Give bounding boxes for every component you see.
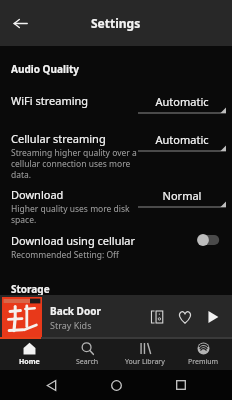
button[interactable]: Recent apps	[167, 371, 195, 399]
staticText: Storage	[11, 282, 50, 295]
button[interactable]: Automatic	[138, 94, 226, 114]
staticText: Home	[19, 357, 40, 367]
button[interactable]: Home	[102, 371, 130, 399]
button[interactable]: Normal	[138, 188, 226, 208]
staticText: Automatic	[138, 132, 226, 147]
button[interactable]: Connect to a device	[146, 306, 168, 328]
button[interactable]: Back	[37, 371, 65, 399]
staticText: Download	[11, 187, 64, 202]
button[interactable]: Back	[4, 7, 36, 39]
staticText: Normal	[138, 188, 226, 203]
staticText: Premium	[188, 357, 219, 367]
staticText: Cellular streaming	[11, 131, 106, 146]
staticText: Audio Quality	[11, 62, 79, 76]
staticText: Streaming higher quality over a cellular…	[11, 147, 141, 180]
button[interactable]: Your Library	[116, 339, 174, 370]
button[interactable]: Automatic	[138, 132, 226, 152]
button[interactable]: Download using cellular toggle	[194, 232, 224, 248]
staticText: Download using cellular	[11, 233, 136, 248]
staticText: Search	[76, 357, 99, 367]
button[interactable]: Download	[0, 184, 232, 226]
button[interactable]: Back Door	[0, 295, 232, 339]
button[interactable]: WiFi streaming	[0, 90, 232, 124]
staticText: Your Library	[125, 357, 165, 367]
staticText: Back Door	[50, 304, 101, 318]
button[interactable]: Search	[58, 339, 116, 370]
button[interactable]: Premium	[174, 339, 232, 370]
button[interactable]: Play	[202, 306, 224, 328]
staticText: Recommended Setting: Off	[11, 249, 119, 261]
button[interactable]: Home	[0, 339, 58, 370]
staticText: Settings	[91, 15, 141, 31]
button[interactable]: Download using cellular	[0, 230, 232, 264]
staticText: Higher quality uses more disk space.	[11, 203, 141, 225]
staticText: Automatic	[138, 94, 226, 109]
button[interactable]: Cellular streaming	[0, 128, 232, 180]
staticText: WiFi streaming	[11, 93, 89, 108]
staticText: Stray Kids	[50, 319, 92, 331]
button[interactable]: Save to your library	[174, 306, 196, 328]
